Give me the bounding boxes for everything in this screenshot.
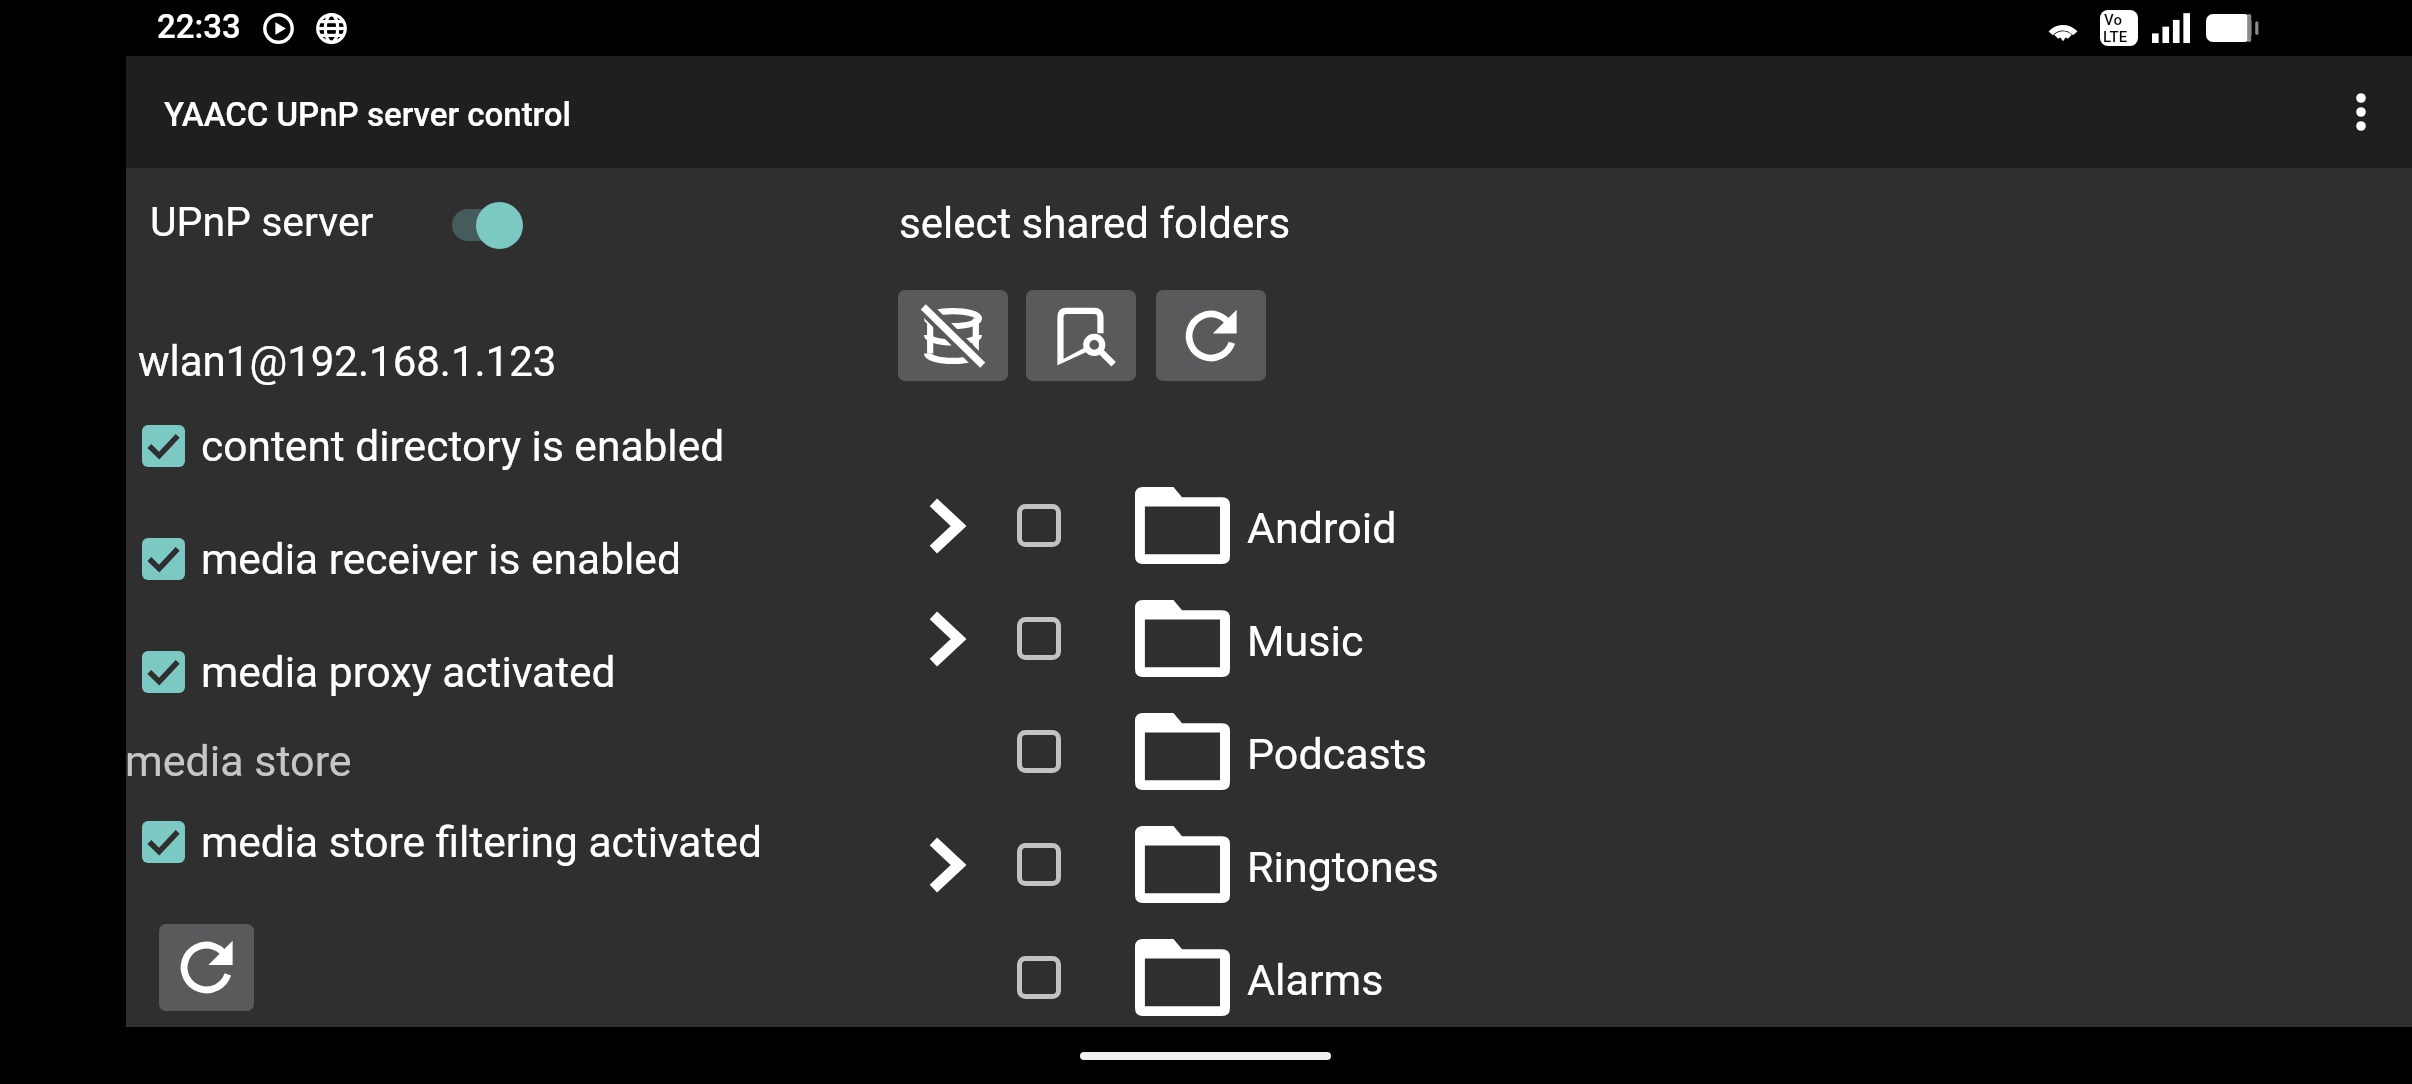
staticText: wlan1@192.168.1.123: [138, 337, 557, 386]
button[interactable]: Alarms: [1096, 922, 1716, 1035]
staticText: media proxy activated: [201, 648, 616, 698]
staticText: Music: [1247, 616, 1364, 666]
staticText: select shared folders: [899, 199, 1291, 248]
button[interactable]: Share Podcasts: [1006, 718, 1072, 784]
button[interactable]: Share Music: [1006, 605, 1072, 671]
button[interactable]: Refresh media store: [159, 924, 254, 1011]
button[interactable]: Ringtones: [1096, 809, 1716, 922]
button[interactable]: Music: [1096, 583, 1716, 696]
staticText: UPnP server: [150, 198, 374, 246]
button[interactable]: More options: [2321, 72, 2401, 152]
button[interactable]: Android: [1096, 470, 1716, 583]
staticText: Ringtones: [1247, 842, 1439, 892]
staticText: YAACC UPnP server control: [164, 95, 571, 134]
button[interactable]: media proxy activated: [132, 639, 852, 705]
button[interactable]: Podcasts: [1096, 696, 1716, 809]
staticText: content directory is enabled: [201, 422, 725, 472]
staticText: media store filtering activated: [201, 818, 762, 868]
staticText: 22:33: [157, 7, 241, 46]
button[interactable]: media receiver is enabled: [132, 526, 852, 592]
staticText: LTE: [2103, 28, 2128, 46]
button[interactable]: media store filtering activated: [132, 809, 852, 875]
button[interactable]: content directory is enabled: [132, 413, 852, 479]
button[interactable]: Expand Ringtones: [906, 820, 986, 910]
button[interactable]: Share Alarms: [1006, 944, 1072, 1010]
staticText: media store: [125, 736, 352, 786]
staticText: media receiver is enabled: [201, 535, 681, 585]
staticText: Vo: [2104, 11, 2122, 29]
staticText: Android: [1247, 503, 1397, 553]
button[interactable]: Share Ringtones: [1006, 831, 1072, 897]
button[interactable]: Expand Music: [906, 594, 986, 684]
button[interactable]: Share Android: [1006, 492, 1072, 558]
staticText: Podcasts: [1247, 729, 1427, 779]
button[interactable]: Browse folders: [1026, 290, 1136, 381]
button[interactable]: Clear media store: [898, 290, 1008, 381]
staticText: Alarms: [1247, 955, 1384, 1005]
button[interactable]: UPnP server switch: [136, 184, 556, 244]
button[interactable]: Expand Android: [906, 481, 986, 571]
button[interactable]: Refresh folder list: [1156, 290, 1266, 381]
